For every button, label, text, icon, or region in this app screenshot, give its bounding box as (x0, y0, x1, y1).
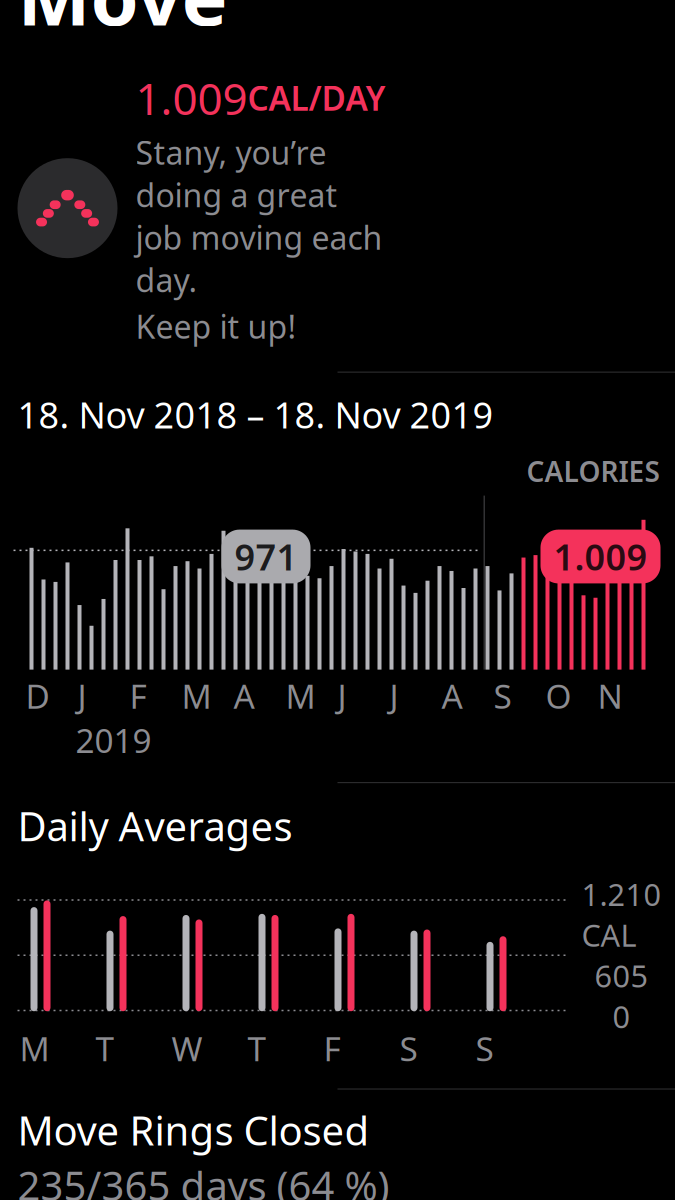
staticText: 1.210 CAL (581, 874, 661, 955)
staticText: F (129, 674, 146, 718)
staticText: W (171, 1026, 202, 1071)
staticText: A (441, 674, 462, 718)
staticText: 0 (612, 996, 630, 1037)
staticText: Move Rings Closed (17, 1103, 369, 1157)
staticText: O (545, 674, 571, 718)
staticText: S (399, 1026, 417, 1071)
staticText: J (77, 674, 86, 718)
staticText: M (285, 674, 315, 718)
staticText: Daily Averages (17, 799, 292, 852)
staticText: Move (17, 0, 227, 47)
staticText: Keep it up! (135, 305, 296, 348)
staticText: 971 (234, 533, 297, 580)
staticText: 605 (594, 955, 648, 996)
staticText: F (323, 1026, 340, 1071)
staticText: S (493, 674, 511, 718)
staticText: 1.009 (553, 533, 647, 580)
staticText: J (389, 674, 398, 718)
staticText: 2019 (75, 718, 151, 762)
staticText: CAL/DAY (247, 76, 385, 120)
staticText: 18. Nov 2018 – 18. Nov 2019 (17, 391, 493, 438)
staticText: Stany, you’re doing a great job moving e… (135, 131, 382, 301)
staticText: CALORIES (526, 452, 659, 490)
staticText: M (19, 1026, 49, 1071)
staticText: J (337, 674, 346, 718)
staticText: A (233, 674, 254, 718)
staticText: S (475, 1026, 493, 1071)
staticText: M (181, 674, 211, 718)
staticText: 235/365 days (64 %) (17, 1159, 389, 1200)
staticText: D (25, 674, 49, 718)
staticText: T (95, 1026, 114, 1071)
staticText: T (247, 1026, 266, 1071)
staticText: 1.009 (135, 69, 247, 127)
staticText: N (597, 674, 622, 718)
